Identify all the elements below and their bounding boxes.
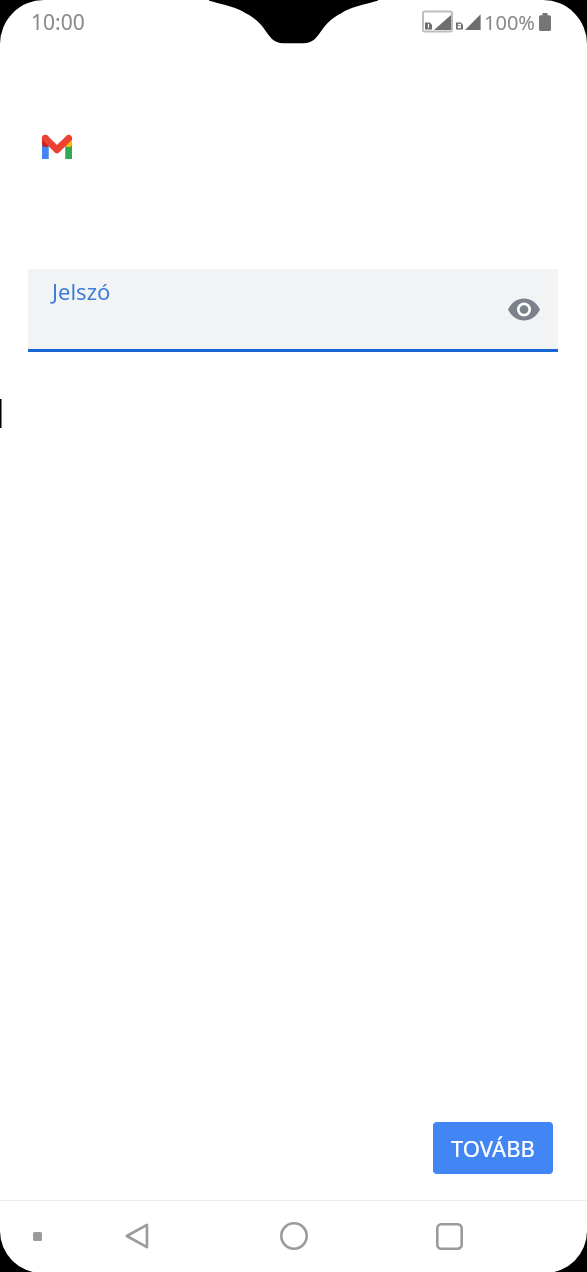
staticText: 100% bbox=[484, 9, 535, 36]
button[interactable]: Menu bbox=[22, 1221, 52, 1251]
button[interactable]: Show password bbox=[500, 285, 548, 333]
staticText: Jelszó bbox=[52, 276, 111, 306]
button[interactable]: Back bbox=[112, 1210, 164, 1262]
button[interactable]: Home bbox=[268, 1210, 320, 1262]
button[interactable]: Jelszó bbox=[28, 269, 558, 349]
button[interactable]: Recents bbox=[423, 1210, 475, 1262]
button[interactable]: TOVÁBB bbox=[433, 1122, 553, 1174]
staticText: TOVÁBB bbox=[451, 1133, 535, 1163]
staticText: 10:00 bbox=[31, 8, 85, 37]
